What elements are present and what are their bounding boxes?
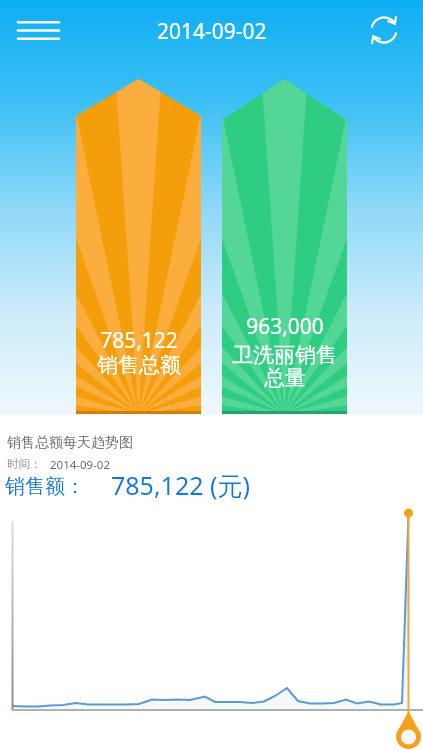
- staticText: 销售额：: [5, 474, 85, 499]
- button[interactable]: [10, 12, 66, 48]
- staticText: 销售总额每天趋势图: [7, 434, 133, 452]
- button[interactable]: [222, 79, 347, 414]
- staticText: 963,000: [246, 312, 324, 341]
- staticText: 时间：: [7, 457, 42, 471]
- button[interactable]: [366, 12, 402, 48]
- staticText: 785,122 (元): [111, 468, 251, 502]
- staticText: 2014-09-02: [50, 457, 111, 473]
- staticText: 销售总额: [97, 352, 181, 378]
- button[interactable]: [76, 79, 201, 414]
- staticText: 卫洗丽销售: [232, 342, 337, 368]
- staticText: 2014-09-02: [157, 17, 267, 46]
- staticText: 总量: [264, 365, 306, 391]
- staticText: 785,122: [100, 326, 178, 355]
